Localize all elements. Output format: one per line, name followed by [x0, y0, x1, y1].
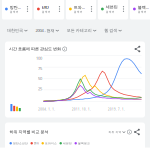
staticText: 25	[38, 86, 42, 91]
staticText: 2011. 10. 1.	[72, 108, 91, 111]
staticText: 블랙핑크	[78, 142, 90, 145]
staticText: 검색어	[10, 10, 19, 13]
button[interactable]: 대한민국	[7, 26, 27, 35]
button[interactable]: 2004 - 현재	[35, 26, 59, 35]
staticText: 100	[36, 55, 42, 61]
staticText: 블랙핑크	[138, 4, 149, 10]
staticText: EXO	[42, 4, 49, 10]
button[interactable]: Share	[134, 45, 141, 52]
staticText: 트와이스	[74, 4, 85, 10]
button[interactable]: 웹 검색	[104, 26, 122, 35]
staticText: 2004. 1. 1.	[38, 108, 55, 111]
staticText: 검색어	[74, 10, 83, 13]
button[interactable]: 방탄소년단	[2, 0, 32, 19]
staticText: 웹 검색	[104, 28, 117, 33]
staticText: EXO	[34, 141, 39, 145]
staticText: 검색어	[106, 10, 115, 13]
staticText: 2019. 7. 1.	[108, 108, 125, 111]
button[interactable]: 트와이스	[66, 0, 96, 19]
staticText: 50	[38, 76, 42, 81]
staticText: 세븐틴	[106, 4, 117, 10]
staticText: 시간 흐름에 따른 관심도 변화	[9, 46, 61, 51]
staticText: 검색어	[138, 10, 147, 13]
staticText: 트와이스	[45, 142, 57, 145]
button[interactable]: 하위 지역	[108, 130, 125, 134]
staticText: 하위 지역별 비교 분석	[9, 129, 48, 134]
staticText: 하위 지역	[108, 130, 121, 134]
staticText: 방탄소년단	[10, 4, 21, 10]
button[interactable]: 모든 카테고리	[67, 26, 96, 35]
staticText: 2004 - 현재	[35, 28, 54, 33]
staticText: 세븐틴	[63, 142, 72, 145]
staticText: 검색어	[42, 10, 51, 13]
staticText: 방탄소년단	[13, 142, 28, 145]
staticText: 대한민국	[7, 28, 23, 33]
button[interactable]: 블랙핑크	[130, 0, 150, 19]
staticText: 75	[38, 66, 42, 71]
button[interactable]: 세븐틴	[98, 0, 128, 19]
button[interactable]: Share	[133, 128, 140, 135]
button[interactable]: EXO	[34, 0, 64, 19]
staticText: 모든 카테고리	[67, 28, 92, 33]
